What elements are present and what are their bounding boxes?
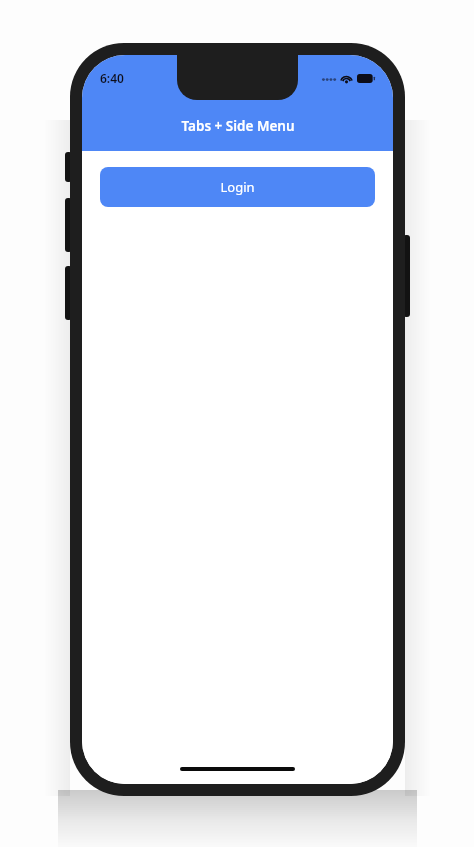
other: Battery [357,74,375,83]
other: Cellular signal [321,74,336,83]
other: Wi-Fi [340,73,353,83]
staticText: Tabs + Side Menu [181,117,295,135]
staticText: Login [220,178,255,196]
button[interactable]: Login [100,167,375,207]
staticText: 6:40 [100,70,124,86]
